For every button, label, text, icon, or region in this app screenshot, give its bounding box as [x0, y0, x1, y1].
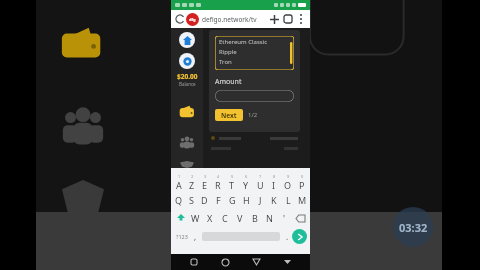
- staticText: W: [191, 212, 200, 224]
- button[interactable]: N: [262, 209, 277, 227]
- button[interactable]: H: [239, 191, 253, 209]
- staticText: U: [257, 179, 264, 191]
- button[interactable]: Home: [179, 32, 195, 48]
- button[interactable]: C: [217, 209, 232, 227]
- button[interactable]: Home: [217, 254, 233, 270]
- staticText: Next: [221, 111, 237, 120]
- button[interactable]: Next: [215, 109, 243, 121]
- staticText: D: [201, 194, 208, 206]
- button[interactable]: V: [232, 209, 247, 227]
- staticText: 1/2: [248, 111, 258, 119]
- staticText: S: [189, 194, 194, 206]
- staticText: J: [259, 194, 262, 206]
- staticText: ,: [194, 231, 197, 242]
- staticText: K: [271, 194, 277, 206]
- staticText: 0: [301, 174, 304, 179]
- button[interactable]: 4: [211, 173, 225, 191]
- staticText: 3: [204, 174, 207, 179]
- staticText: H: [243, 194, 250, 206]
- button[interactable]: Settings: [179, 53, 195, 69]
- staticText: F: [216, 194, 221, 206]
- button[interactable]: Ethereum Classic: [215, 36, 294, 70]
- staticText: 4: [217, 174, 220, 179]
- button[interactable]: Back: [248, 254, 264, 270]
- button[interactable]: Backspace: [292, 209, 308, 227]
- staticText: R: [215, 179, 221, 191]
- staticText: 03:32: [399, 220, 428, 235]
- button[interactable]: F: [211, 191, 225, 209]
- staticText: Balance: [179, 81, 196, 87]
- staticText: dfg: [189, 17, 196, 22]
- staticText: G: [229, 194, 236, 206]
- button[interactable]: Tabs: [281, 12, 295, 26]
- staticText: A: [176, 179, 182, 191]
- button[interactable]: B: [247, 209, 262, 227]
- button[interactable]: Q: [172, 191, 185, 209]
- button[interactable]: L: [281, 191, 295, 209]
- button[interactable]: 5: [225, 173, 239, 191]
- button[interactable]: .: [282, 227, 292, 245]
- button[interactable]: 0: [295, 173, 309, 191]
- staticText: N: [266, 212, 273, 224]
- staticText: ?123: [176, 233, 188, 240]
- staticText: X: [207, 212, 213, 224]
- button[interactable]: D: [198, 191, 211, 209]
- staticText: B: [252, 212, 258, 224]
- staticText: 2: [191, 174, 194, 179]
- button[interactable]: Security: [177, 161, 197, 168]
- button[interactable]: 3: [198, 173, 211, 191]
- button[interactable]: 1: [172, 173, 185, 191]
- staticText: C: [222, 212, 228, 224]
- staticText: .: [286, 231, 289, 242]
- button[interactable]: M: [295, 191, 309, 209]
- staticText: Ethereum Classic: [219, 38, 268, 46]
- button[interactable]: W: [188, 209, 202, 227]
- button[interactable]: X: [202, 209, 217, 227]
- button[interactable]: G: [225, 191, 239, 209]
- button[interactable]: 9: [281, 173, 295, 191]
- staticText: 9: [287, 174, 290, 179]
- staticText: ': [283, 212, 286, 224]
- button[interactable]: Wallet: [176, 101, 198, 123]
- staticText: 1: [178, 174, 181, 179]
- button[interactable]: ?123: [174, 227, 190, 245]
- staticText: 8: [273, 174, 276, 179]
- button[interactable]: ': [277, 209, 292, 227]
- staticText: M: [298, 194, 307, 206]
- button[interactable]: S: [185, 191, 198, 209]
- button[interactable]: Shift: [173, 209, 188, 227]
- button[interactable]: 8: [267, 173, 281, 191]
- button[interactable]: 2: [185, 173, 198, 191]
- staticText: 7: [259, 174, 262, 179]
- staticText: V: [237, 212, 243, 224]
- staticText: 5: [231, 174, 234, 179]
- button[interactable]: Community: [176, 131, 198, 153]
- button[interactable]: Site logo: [186, 13, 199, 26]
- staticText: Tron: [219, 58, 232, 66]
- button[interactable]: 6: [239, 173, 253, 191]
- button[interactable]: 7: [253, 173, 267, 191]
- staticText: L: [286, 194, 291, 206]
- button[interactable]: New tab: [267, 12, 281, 26]
- button[interactable]: K: [267, 191, 281, 209]
- button[interactable]: Recents: [186, 254, 202, 270]
- staticText: O: [284, 179, 292, 191]
- staticText: Amount: [215, 77, 242, 87]
- staticText: Z: [189, 179, 195, 191]
- staticText: Y: [243, 179, 249, 191]
- button[interactable]: Hide keyboard: [279, 254, 295, 270]
- staticText: Ripple: [219, 48, 237, 56]
- button[interactable]: [215, 90, 294, 102]
- button[interactable]: ,: [190, 227, 200, 245]
- staticText: Q: [175, 194, 183, 206]
- button[interactable]: defigo.network/tv: [202, 15, 267, 24]
- staticText: $20.00: [177, 72, 198, 81]
- button[interactable]: J: [253, 191, 267, 209]
- staticText: T: [229, 179, 235, 191]
- staticText: I: [272, 179, 276, 191]
- button[interactable]: More options: [295, 13, 307, 25]
- button[interactable]: Enter: [292, 229, 307, 244]
- button[interactable]: Reload: [174, 13, 186, 25]
